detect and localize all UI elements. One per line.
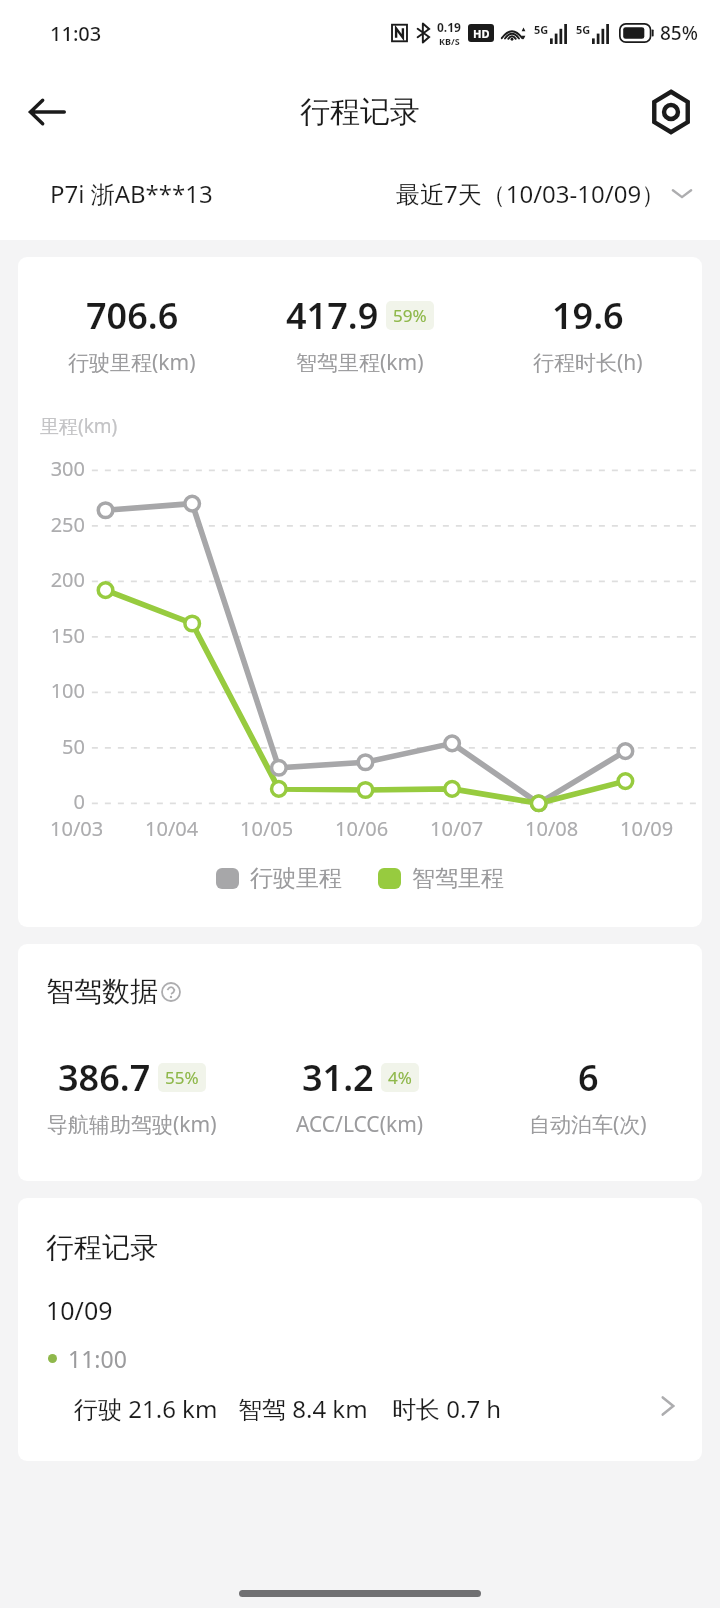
- button[interactable]: 智驾数据: [46, 974, 181, 1009]
- staticText: 150: [50, 622, 85, 649]
- other: Help: [161, 982, 181, 1002]
- staticText: 706.6: [86, 291, 179, 340]
- staticText: 10/03: [50, 815, 104, 842]
- staticText: HD: [473, 26, 490, 41]
- other: Open trip detail: [654, 1393, 680, 1419]
- staticText: 行驶里程(km): [68, 348, 196, 377]
- staticText: 31.2: [302, 1053, 374, 1102]
- staticText: 智驾里程(km): [296, 348, 424, 377]
- staticText: 导航辅助驾驶(km): [47, 1110, 217, 1139]
- button[interactable]: 智驾里程: [378, 864, 504, 893]
- staticText: 85%: [660, 20, 698, 46]
- staticText: 最近7天（10/03-10/09）: [396, 177, 666, 210]
- staticText: 59%: [393, 304, 427, 327]
- staticText: 19.6: [552, 291, 624, 340]
- staticText: 200: [50, 566, 85, 593]
- staticText: 自动泊车(次): [529, 1110, 647, 1139]
- staticText: 行程时长(h): [533, 348, 643, 377]
- staticText: ACC/LCC(km): [296, 1110, 424, 1139]
- button[interactable]: Service settings: [640, 81, 702, 143]
- staticText: 行程记录: [46, 1230, 158, 1265]
- staticText: KB/S: [439, 35, 460, 47]
- staticText: 10/07: [430, 815, 484, 842]
- staticText: 行驶里程: [250, 864, 342, 893]
- staticText: 11:00: [68, 1343, 127, 1374]
- staticText: 行程记录: [300, 93, 420, 131]
- staticText: 10/09: [46, 1293, 113, 1327]
- staticText: 6: [578, 1053, 599, 1102]
- staticText: 里程(km): [40, 413, 118, 439]
- staticText: 行驶 21.6 km: [74, 1392, 218, 1425]
- staticText: 11:03: [50, 20, 102, 47]
- button[interactable]: 最近7天（10/03-10/09）: [396, 177, 694, 210]
- staticText: 10/09: [620, 815, 674, 842]
- button[interactable]: 行驶里程: [216, 864, 342, 893]
- staticText: 智驾数据: [46, 974, 158, 1009]
- staticText: 智驾里程: [412, 864, 504, 893]
- staticText: 386.7: [58, 1053, 151, 1102]
- staticText: 417.9: [286, 291, 379, 340]
- staticText: 0: [73, 788, 85, 815]
- staticText: 10/04: [145, 815, 199, 842]
- staticText: 50: [62, 733, 85, 760]
- staticText: 100: [50, 677, 85, 704]
- staticText: 250: [50, 511, 85, 538]
- staticText: 10/05: [240, 815, 294, 842]
- staticText: 5G: [534, 22, 549, 37]
- staticText: 5G: [576, 22, 591, 37]
- button[interactable]: 11:00: [18, 1343, 702, 1425]
- staticText: 10/06: [335, 815, 389, 842]
- staticText: 0.19: [437, 19, 461, 35]
- staticText: 55%: [165, 1066, 199, 1089]
- staticText: 10/08: [525, 815, 579, 842]
- button[interactable]: Back: [16, 81, 78, 143]
- staticText: P7i 浙AB***13: [50, 177, 213, 210]
- staticText: 4%: [388, 1066, 412, 1089]
- staticText: 智驾 8.4 km: [238, 1392, 368, 1425]
- staticText: 300: [50, 455, 85, 482]
- staticText: 时长 0.7 h: [392, 1392, 502, 1425]
